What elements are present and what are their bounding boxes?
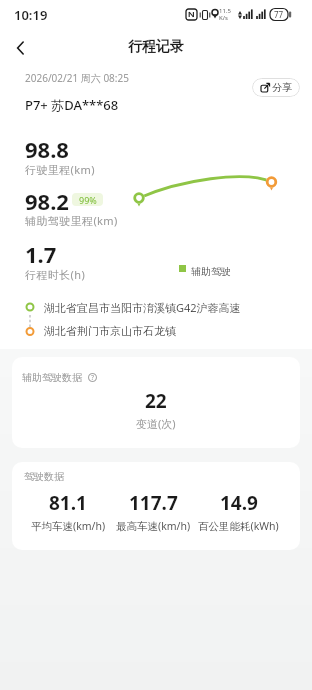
button[interactable]: 分享	[252, 78, 300, 97]
staticText: 98.2	[25, 186, 69, 214]
button[interactable]	[8, 35, 34, 61]
staticText: 变道(次)	[136, 416, 176, 431]
staticText: 行程时长(h)	[25, 267, 86, 282]
staticText: 81.1	[49, 490, 87, 516]
button[interactable]: 驾驶数据	[12, 462, 300, 550]
button[interactable]: 辅助驾驶数据	[12, 357, 300, 448]
staticText: 10:19	[14, 6, 48, 24]
staticText: 行程记录	[128, 38, 184, 56]
staticText: 湖北省宜昌市当阳市淯溪镇G42沪蓉高速	[44, 300, 241, 315]
staticText: 2026/02/21 周六 08:25	[25, 71, 129, 85]
staticText: P7+ 苏DA***68	[25, 96, 119, 114]
staticText: 99%	[79, 194, 97, 206]
staticText: 11.5	[219, 7, 231, 15]
staticText: 98.8	[25, 134, 69, 162]
staticText: 分享	[272, 81, 292, 94]
staticText: ?	[91, 373, 95, 383]
staticText: 最高车速(km/h)	[116, 519, 191, 533]
staticText: 百公里能耗(kWh)	[198, 519, 279, 533]
staticText: 平均车速(km/h)	[31, 519, 106, 533]
staticText: 湖北省荆门市京山市石龙镇	[44, 324, 176, 338]
staticText: 辅助驾驶数据	[22, 371, 82, 384]
staticText: 辅助驾驶里程(km)	[25, 213, 118, 228]
staticText: K/s	[219, 14, 228, 22]
staticText: 驾驶数据	[24, 470, 64, 483]
staticText: 77	[274, 9, 284, 20]
staticText: 1.7	[25, 239, 57, 267]
staticText: 辅助驾驶	[191, 265, 231, 278]
staticText: 14.9	[220, 490, 258, 516]
staticText: 117.7	[129, 490, 178, 516]
staticText: 22	[145, 388, 167, 414]
staticText: 行驶里程(km)	[25, 162, 95, 177]
